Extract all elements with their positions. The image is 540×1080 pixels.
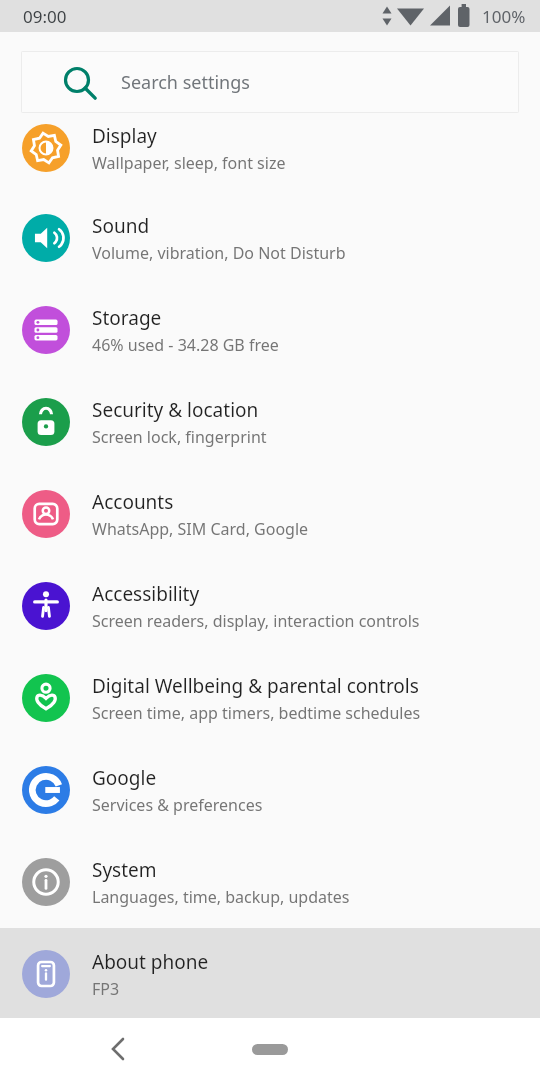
staticText: About phone	[92, 949, 209, 975]
staticText: Security & location	[92, 397, 259, 423]
staticText: 46% used - 34.28 GB free	[92, 334, 279, 356]
button[interactable]: Search settings	[21, 51, 519, 113]
staticText: 09:00	[23, 5, 67, 28]
staticText: FP3	[92, 978, 120, 1000]
staticText: Storage	[92, 305, 162, 331]
staticText: Screen time, app timers, bedtime schedul…	[92, 702, 421, 724]
button[interactable]: Sound	[0, 192, 540, 284]
staticText: 100%	[482, 5, 526, 28]
staticText: Screen lock, fingerprint	[92, 426, 267, 448]
staticText: Wallpaper, sleep, font size	[92, 152, 286, 174]
staticText: Languages, time, backup, updates	[92, 886, 350, 908]
button[interactable]: Back	[92, 1023, 144, 1075]
staticText: Accessibility	[92, 581, 200, 607]
staticText: Screen readers, display, interaction con…	[92, 610, 420, 632]
button[interactable]: Digital Wellbeing & parental controls	[0, 652, 540, 744]
staticText: Digital Wellbeing & parental controls	[92, 673, 419, 699]
button[interactable]: Storage	[0, 284, 540, 376]
button[interactable]: Google	[0, 744, 540, 836]
button[interactable]: Home	[233, 1032, 307, 1066]
button[interactable]: Accessibility	[0, 560, 540, 652]
button[interactable]: Security & location	[0, 376, 540, 468]
staticText: Accounts	[92, 489, 174, 515]
staticText: Google	[92, 765, 157, 791]
button[interactable]: Display	[0, 102, 540, 194]
staticText: Search settings	[121, 70, 250, 95]
button[interactable]: System	[0, 836, 540, 928]
staticText: WhatsApp, SIM Card, Google	[92, 518, 309, 540]
staticText: Sound	[92, 213, 150, 239]
staticText: System	[92, 857, 157, 883]
staticText: Services & preferences	[92, 794, 263, 816]
button[interactable]: About phone	[0, 928, 540, 1020]
staticText: Volume, vibration, Do Not Disturb	[92, 242, 346, 264]
button[interactable]: Accounts	[0, 468, 540, 560]
staticText: Display	[92, 123, 157, 149]
